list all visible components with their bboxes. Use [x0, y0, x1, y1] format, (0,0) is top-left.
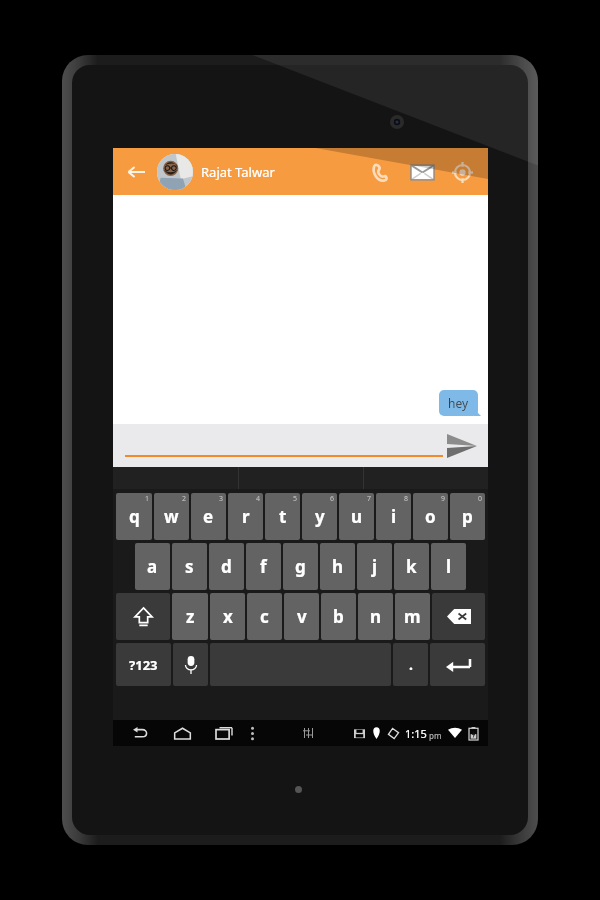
staticText: 3	[219, 494, 224, 504]
staticText: l	[446, 555, 452, 578]
staticText: d	[221, 555, 232, 578]
button[interactable]: o	[413, 493, 448, 540]
button[interactable]: Enter	[430, 643, 485, 686]
button[interactable]: hey	[439, 390, 478, 416]
button[interactable]: a	[135, 543, 170, 590]
button[interactable]: p	[450, 493, 485, 540]
button[interactable]: k	[394, 543, 429, 590]
button[interactable]: Recents	[207, 720, 241, 746]
staticText: 2	[182, 494, 187, 504]
button[interactable]: u	[339, 493, 374, 540]
button[interactable]: t	[265, 493, 300, 540]
staticText: c	[260, 605, 269, 628]
button[interactable]: Home	[165, 720, 199, 746]
button[interactable]: q	[116, 493, 152, 540]
staticText: k	[406, 555, 417, 578]
staticText: q	[129, 505, 140, 528]
staticText: y	[315, 505, 325, 528]
staticText: v	[297, 605, 307, 628]
button[interactable]: Shift	[116, 593, 170, 640]
button[interactable]: c	[247, 593, 282, 640]
staticText: 7	[367, 494, 372, 504]
staticText: 0	[478, 494, 483, 504]
staticText: 8	[404, 494, 409, 504]
button[interactable]: Symbols	[116, 643, 171, 686]
staticText: w	[164, 505, 179, 528]
staticText: i	[391, 505, 397, 528]
button[interactable]: Back	[119, 155, 153, 189]
button[interactable]: r	[228, 493, 263, 540]
button[interactable]: Backspace	[432, 593, 485, 640]
staticText: b	[333, 605, 344, 628]
staticText: o	[425, 505, 436, 528]
staticText: 9	[441, 494, 446, 504]
button[interactable]: h	[320, 543, 355, 590]
button[interactable]: n	[358, 593, 393, 640]
button[interactable]: x	[210, 593, 245, 640]
button[interactable]: s	[172, 543, 207, 590]
staticText: e	[203, 505, 214, 528]
staticText: pm	[429, 730, 442, 741]
staticText: 1:15	[405, 726, 427, 741]
staticText: x	[223, 605, 233, 628]
button[interactable]: Menu	[241, 720, 263, 746]
button[interactable]: b	[321, 593, 356, 640]
staticText: s	[185, 555, 194, 578]
button[interactable]: j	[357, 543, 392, 590]
staticText: h	[332, 555, 344, 578]
button[interactable]: w	[154, 493, 189, 540]
staticText: Rajat Talwar	[201, 163, 275, 181]
button[interactable]: Email	[402, 152, 442, 192]
staticText: r	[242, 505, 250, 528]
button[interactable]: e	[191, 493, 226, 540]
button[interactable]: Period	[393, 643, 428, 686]
button[interactable]: m	[395, 593, 430, 640]
staticText: 6	[330, 494, 335, 504]
button[interactable]: Back	[123, 720, 157, 746]
button[interactable]: Location	[442, 152, 482, 192]
staticText: j	[372, 555, 378, 578]
staticText: 4	[256, 494, 261, 504]
staticText: n	[370, 605, 382, 628]
staticText: g	[295, 555, 306, 578]
button[interactable]: i	[376, 493, 411, 540]
staticText: hey	[448, 395, 469, 411]
staticText: p	[462, 505, 473, 528]
button[interactable]: l	[431, 543, 466, 590]
button[interactable]: Voice input	[173, 643, 208, 686]
button[interactable]: Contact photo	[157, 154, 193, 190]
button[interactable]: d	[209, 543, 244, 590]
button[interactable]: g	[283, 543, 318, 590]
staticText: ?123	[129, 656, 158, 674]
staticText: 5	[293, 494, 298, 504]
staticText: t	[279, 505, 287, 528]
button[interactable]: v	[284, 593, 319, 640]
button[interactable]: f	[246, 543, 281, 590]
staticText: a	[147, 555, 158, 578]
staticText: f	[260, 555, 267, 578]
staticText: .	[409, 655, 413, 674]
button[interactable]: Send	[113, 424, 488, 467]
staticText: m	[404, 605, 421, 628]
staticText: z	[186, 605, 195, 628]
button[interactable]: Call	[362, 152, 402, 192]
button[interactable]: Send	[442, 426, 482, 466]
staticText: 1	[145, 494, 150, 504]
button[interactable]: y	[302, 493, 337, 540]
staticText: u	[351, 505, 363, 528]
button[interactable]: z	[172, 593, 208, 640]
